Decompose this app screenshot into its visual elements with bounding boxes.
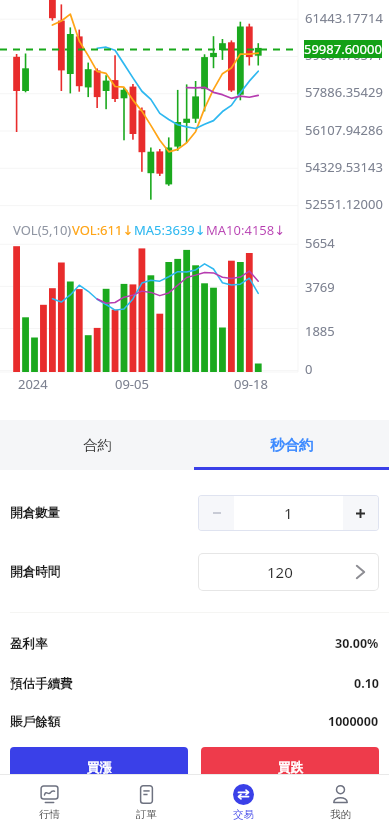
- staticText: 開倉時間: [10, 564, 60, 580]
- staticText: 57886.35429: [305, 83, 383, 101]
- staticText: 52551.12000: [305, 195, 383, 213]
- staticText: VOL(5,10): [13, 221, 72, 239]
- staticText: 30.00%: [335, 635, 379, 652]
- staticText: 1885: [305, 322, 335, 340]
- staticText: 0: [305, 360, 313, 378]
- staticText: 59987.60000: [304, 40, 382, 58]
- button[interactable]: 行情: [0, 775, 98, 824]
- staticText: 56107.94286: [305, 121, 383, 139]
- staticText: 買漲: [87, 760, 112, 776]
- button[interactable]: 我的: [292, 775, 389, 824]
- staticText: 61443.17714: [305, 9, 383, 27]
- staticText: 交易: [233, 808, 254, 821]
- staticText: 3769: [305, 278, 335, 296]
- staticText: 1: [284, 503, 293, 523]
- staticText: 2024: [18, 375, 48, 393]
- staticText: 買跌: [278, 760, 303, 776]
- button[interactable]: 買跌: [201, 747, 379, 789]
- staticText: 5654: [305, 234, 335, 252]
- button[interactable]: 合約: [0, 420, 194, 470]
- button[interactable]: 秒合約: [194, 420, 389, 470]
- staticText: 1000000: [328, 713, 379, 730]
- staticText: 訂單: [136, 808, 157, 821]
- staticText: 盈利率: [10, 636, 48, 652]
- staticText: MA10:4158↓: [206, 221, 286, 239]
- staticText: 合約: [83, 436, 112, 454]
- button[interactable]: Decrease quantity: [199, 496, 234, 530]
- staticText: 120: [267, 562, 293, 582]
- button[interactable]: Increase quantity: [343, 496, 378, 530]
- staticText: 59664.76571: [305, 46, 383, 64]
- other: Choose duration: [356, 565, 365, 579]
- staticText: VOL:611↓: [72, 221, 134, 239]
- staticText: MA5:3639↓: [134, 221, 206, 239]
- button[interactable]: 買漲: [10, 747, 188, 789]
- staticText: 09-05: [115, 375, 149, 393]
- staticText: 賬戶餘額: [10, 714, 60, 730]
- staticText: 54329.53143: [305, 158, 383, 176]
- button[interactable]: 訂單: [98, 775, 195, 824]
- staticText: 我的: [330, 808, 351, 821]
- staticText: 預估手續費: [10, 676, 73, 692]
- staticText: 開倉數量: [10, 505, 60, 521]
- button[interactable]: 交易: [195, 775, 292, 824]
- staticText: 09-18: [234, 375, 268, 393]
- staticText: 秒合約: [270, 436, 314, 454]
- staticText: 0.10: [354, 675, 379, 692]
- button[interactable]: 120: [199, 554, 378, 590]
- staticText: 行情: [39, 808, 60, 821]
